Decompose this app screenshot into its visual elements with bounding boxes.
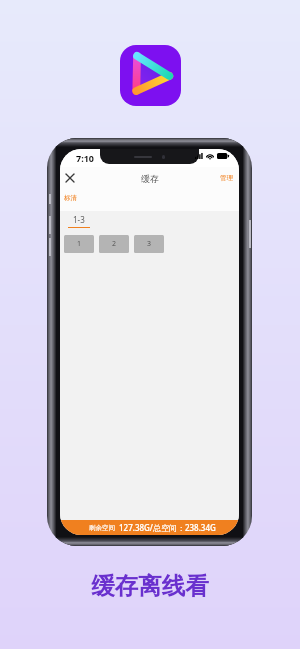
button[interactable]: 3 <box>134 235 164 253</box>
staticText: 1-3 <box>73 214 85 225</box>
staticText: 剩余空间 <box>89 524 115 532</box>
button[interactable]: 管理 <box>220 174 233 182</box>
staticText: 缓存离线看 <box>0 571 300 601</box>
button[interactable]: Close <box>62 170 78 186</box>
button[interactable]: 2 <box>99 235 129 253</box>
button[interactable]: 1 <box>64 235 94 253</box>
staticText: 3 <box>147 239 152 249</box>
staticText: 1 <box>77 239 82 249</box>
staticText: 标清 <box>64 194 77 202</box>
staticText: 7:10 <box>76 152 94 164</box>
staticText: 缓存 <box>141 173 159 184</box>
staticText: 127.38G/总空间：238.34G <box>119 522 216 533</box>
staticText: 2 <box>112 239 117 249</box>
